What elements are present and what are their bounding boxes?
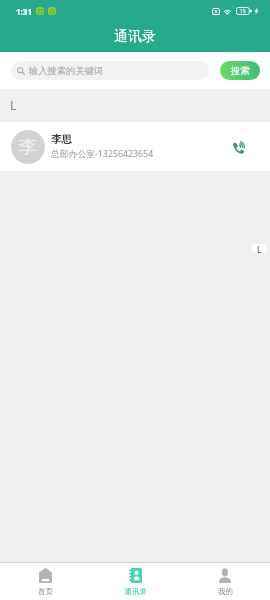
button[interactable]: 通讯录: [90, 563, 180, 600]
staticText: L: [10, 97, 17, 114]
button[interactable]: L: [252, 244, 267, 253]
staticText: L: [257, 244, 262, 253]
staticText: 1:31: [16, 6, 32, 17]
button[interactable]: 输入搜索的关键词: [11, 61, 209, 80]
staticText: 通讯录: [124, 587, 147, 596]
button[interactable]: Call 李思: [228, 137, 248, 157]
staticText: 李思: [51, 133, 72, 146]
button[interactable]: 李: [0, 122, 270, 171]
staticText: 通讯录: [114, 28, 156, 46]
staticText: 李: [19, 136, 37, 159]
staticText: 搜索: [231, 65, 250, 77]
button[interactable]: 首页: [0, 563, 90, 600]
button[interactable]: 我的: [180, 563, 270, 600]
staticText: 输入搜索的关键词: [29, 65, 104, 77]
staticText: 15: [240, 8, 246, 15]
staticText: 首页: [38, 587, 53, 596]
staticText: 总部办公室-13256423654: [51, 148, 154, 160]
staticText: 我的: [218, 587, 233, 596]
button[interactable]: 搜索: [220, 61, 260, 80]
